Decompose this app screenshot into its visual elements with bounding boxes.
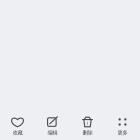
staticText: 更多 <box>117 129 127 136</box>
button[interactable]: Favorite <box>0 114 35 136</box>
button[interactable]: More <box>105 114 140 136</box>
staticText: 收藏 <box>12 129 22 136</box>
staticText: 删除 <box>82 129 92 136</box>
button[interactable]: Edit <box>35 114 70 136</box>
staticText: 编辑 <box>47 129 57 136</box>
button[interactable]: Delete <box>70 114 105 136</box>
